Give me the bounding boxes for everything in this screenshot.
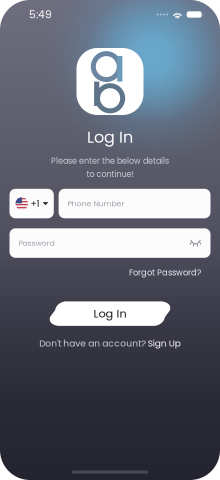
- button[interactable]: Don't have an account?: [39, 337, 181, 350]
- staticText: Password: [18, 238, 54, 248]
- button[interactable]: Log In: [49, 301, 171, 326]
- staticText: Log In: [87, 126, 133, 148]
- staticText: Please enter the below details: [51, 155, 169, 167]
- staticText: Phone Number: [68, 198, 125, 209]
- staticText: to continue!: [86, 169, 133, 180]
- button[interactable]: +1: [9, 189, 54, 218]
- staticText: Forgot Password?: [129, 267, 201, 278]
- staticText: Log In: [93, 306, 126, 322]
- staticText: 5:49: [29, 7, 52, 22]
- staticText: Don't have an account?: [39, 337, 146, 350]
- button[interactable]: Show password: [187, 235, 203, 251]
- staticText: +1: [31, 197, 40, 210]
- staticText: Sign Up: [148, 337, 181, 350]
- button[interactable]: Forgot Password?: [129, 267, 201, 278]
